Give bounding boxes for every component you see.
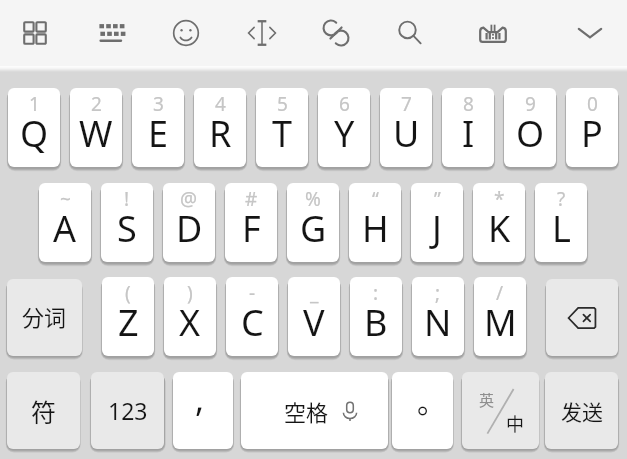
staticText: D bbox=[176, 204, 203, 253]
button[interactable]: 1 bbox=[8, 88, 60, 167]
button[interactable]: @ bbox=[163, 183, 215, 262]
staticText: C bbox=[241, 298, 264, 347]
staticText: G bbox=[300, 204, 327, 253]
staticText: H bbox=[362, 204, 389, 253]
staticText: 4 bbox=[215, 91, 226, 117]
staticText: # bbox=[245, 186, 258, 212]
staticText: 123 bbox=[108, 395, 148, 426]
staticText: 空格 bbox=[284, 395, 329, 427]
staticText: 中 bbox=[506, 410, 524, 436]
button[interactable]: “ bbox=[349, 183, 401, 262]
staticText: 。 bbox=[417, 380, 447, 422]
staticText: “ bbox=[372, 186, 379, 212]
staticText: F bbox=[242, 204, 261, 253]
button[interactable]: More apps bbox=[13, 11, 57, 55]
button[interactable]: , bbox=[173, 372, 233, 449]
staticText: A bbox=[53, 204, 77, 253]
button[interactable]: 发送 bbox=[545, 372, 618, 449]
button[interactable]: Hide keyboard bbox=[568, 11, 612, 55]
button[interactable]: Backspace bbox=[546, 279, 618, 356]
button[interactable]: ~ bbox=[39, 183, 91, 262]
staticText: 英 bbox=[479, 389, 495, 411]
button[interactable]: # bbox=[225, 183, 277, 262]
button[interactable]: 2 bbox=[70, 88, 122, 167]
button[interactable]: 5 bbox=[256, 88, 308, 167]
staticText: U bbox=[393, 109, 420, 158]
button[interactable]: ” bbox=[411, 183, 463, 262]
staticText: % bbox=[305, 186, 321, 212]
button[interactable]: 123 bbox=[91, 372, 164, 449]
button[interactable]: Switch English Chinese bbox=[462, 372, 539, 449]
staticText: - bbox=[249, 280, 256, 306]
staticText: Z bbox=[118, 298, 139, 347]
staticText: * bbox=[494, 186, 505, 212]
staticText: 5 bbox=[277, 91, 288, 117]
staticText: ~ bbox=[60, 186, 71, 212]
staticText: M bbox=[484, 298, 517, 347]
button[interactable]: Emoji bbox=[164, 11, 208, 55]
button[interactable]: 符 bbox=[7, 372, 80, 449]
button[interactable]: Clipboard bbox=[314, 11, 358, 55]
button[interactable]: 。 bbox=[392, 372, 453, 449]
staticText: N bbox=[424, 298, 452, 347]
staticText: 9 bbox=[525, 91, 536, 117]
staticText: 6 bbox=[339, 91, 350, 117]
staticText: / bbox=[496, 280, 504, 306]
staticText: P bbox=[581, 109, 603, 158]
staticText: 符 bbox=[31, 393, 57, 429]
button[interactable]: % bbox=[287, 183, 339, 262]
staticText: Y bbox=[334, 109, 355, 158]
staticText: S bbox=[117, 204, 137, 253]
button[interactable]: ! bbox=[101, 183, 153, 262]
staticText: W bbox=[79, 109, 113, 158]
button[interactable]: / bbox=[474, 277, 526, 356]
staticText: 2 bbox=[91, 91, 102, 117]
staticText: 发送 bbox=[561, 396, 603, 426]
button[interactable]: Assistant bbox=[471, 11, 515, 55]
button[interactable]: 6 bbox=[318, 88, 370, 167]
button[interactable]: Keyboard layout bbox=[89, 11, 133, 55]
button[interactable]: Search bbox=[388, 11, 432, 55]
button[interactable]: Move cursor bbox=[240, 11, 284, 55]
button[interactable]: 3 bbox=[132, 88, 184, 167]
staticText: ; bbox=[435, 280, 441, 306]
staticText: L bbox=[552, 204, 571, 253]
button[interactable]: * bbox=[473, 183, 525, 262]
staticText: @ bbox=[180, 186, 198, 212]
button[interactable]: 9 bbox=[504, 88, 556, 167]
button[interactable]: ; bbox=[412, 277, 464, 356]
staticText: E bbox=[148, 109, 169, 158]
button[interactable]: 空格 bbox=[241, 372, 388, 449]
button[interactable]: ) bbox=[164, 277, 216, 356]
staticText: V bbox=[303, 298, 325, 347]
button[interactable]: _ bbox=[288, 277, 340, 356]
staticText: T bbox=[272, 109, 293, 158]
staticText: O bbox=[516, 109, 545, 158]
button[interactable]: ? bbox=[535, 183, 587, 262]
button[interactable]: 0 bbox=[566, 88, 618, 167]
staticText: 分词 bbox=[22, 300, 67, 332]
staticText: B bbox=[364, 298, 388, 347]
button[interactable]: 4 bbox=[194, 88, 246, 167]
staticText: 8 bbox=[463, 91, 474, 117]
staticText: ) bbox=[187, 280, 193, 306]
staticText: J bbox=[432, 204, 442, 253]
staticText: 3 bbox=[153, 91, 164, 117]
button[interactable]: ( bbox=[102, 277, 154, 356]
staticText: X bbox=[179, 298, 201, 347]
staticText: Q bbox=[20, 109, 49, 158]
button[interactable]: 分词 bbox=[7, 279, 82, 356]
staticText: 1 bbox=[29, 91, 40, 117]
button[interactable]: 8 bbox=[442, 88, 494, 167]
button[interactable]: : bbox=[350, 277, 402, 356]
staticText: ” bbox=[434, 186, 441, 212]
staticText: 0 bbox=[587, 91, 598, 117]
staticText: 7 bbox=[401, 91, 412, 117]
button[interactable]: 7 bbox=[380, 88, 432, 167]
button[interactable]: - bbox=[226, 277, 278, 356]
staticText: R bbox=[209, 109, 232, 158]
staticText: ? bbox=[557, 186, 566, 212]
staticText: K bbox=[488, 204, 511, 253]
staticText: , bbox=[195, 376, 205, 422]
staticText: ! bbox=[124, 186, 130, 212]
